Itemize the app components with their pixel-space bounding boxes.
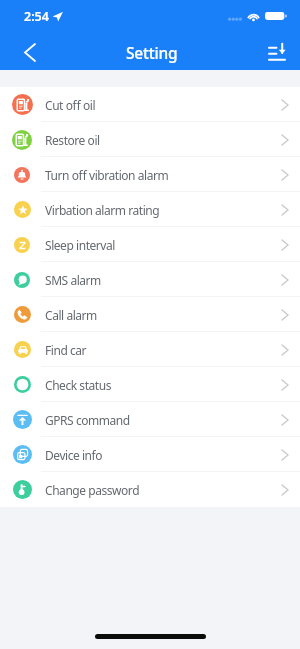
button[interactable]: Find car [0,332,300,367]
staticText: Virbation alarm rating [45,202,160,218]
button[interactable]: Sleep interval [0,227,300,262]
staticText: Setting [126,42,178,63]
button[interactable]: Virbation alarm rating [0,192,300,227]
staticText: Device info [45,447,103,463]
button[interactable]: Change password [0,472,300,507]
staticText: Sleep interval [45,237,115,253]
staticText: Turn off vibration alarm [45,167,169,183]
button[interactable]: Cut off oil [0,87,300,122]
staticText: SMS alarm [45,272,101,288]
staticText: 2:54 [24,8,49,25]
staticText: Cut off oil [45,97,96,113]
button[interactable]: Sort [255,34,299,70]
button[interactable]: Check status [0,367,300,402]
staticText: Call alarm [45,307,97,323]
staticText: Find car [45,342,87,358]
button[interactable]: Restore oil [0,122,300,157]
button[interactable]: Device info [0,437,300,472]
button[interactable]: Back [8,34,52,70]
button[interactable]: Call alarm [0,297,300,332]
staticText: Restore oil [45,132,100,148]
button[interactable]: GPRS command [0,402,300,437]
button[interactable]: Turn off vibration alarm [0,157,300,192]
staticText: Change password [45,482,140,498]
staticText: Check status [45,377,111,393]
staticText: GPRS command [45,412,130,428]
button[interactable]: SMS alarm [0,262,300,297]
